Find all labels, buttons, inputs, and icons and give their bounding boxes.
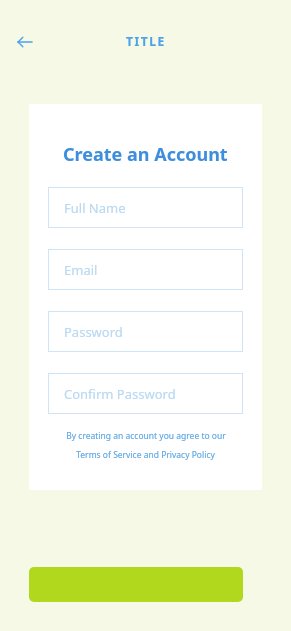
button[interactable]: Confirm Password [48,373,243,414]
button[interactable]: Back [8,28,40,56]
staticText: Full Name [64,199,126,217]
staticText: Create an Account [63,142,228,167]
button[interactable]: Sign Up [29,567,243,602]
button[interactable]: Terms of Service and Privacy Policy [48,449,243,461]
button[interactable]: Password [48,311,243,352]
staticText: Terms of Service and Privacy Policy [76,449,215,461]
staticText: Password [64,323,123,341]
button[interactable]: Full Name [48,187,243,228]
staticText: By creating an account you agree to our [66,430,226,442]
staticText: Confirm Password [64,385,176,403]
staticText: TITLE [126,33,166,49]
staticText: Email [64,261,98,279]
button[interactable]: Email [48,249,243,290]
